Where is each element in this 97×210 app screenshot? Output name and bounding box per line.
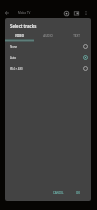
staticText: 854 × 480	[10, 67, 23, 71]
staticText: CANCEL	[53, 191, 64, 195]
button[interactable]: VIDEO	[5, 32, 33, 40]
button[interactable]: Back	[0, 4, 13, 22]
button[interactable]: 854 × 480	[5, 63, 91, 74]
button[interactable]: AUDIO	[33, 32, 62, 40]
staticText: AUDIO	[43, 34, 53, 38]
staticText: VIDEO	[15, 34, 24, 38]
staticText: TEXT	[73, 34, 80, 38]
button[interactable]: OK	[73, 188, 83, 198]
staticText: Select tracks	[10, 23, 37, 29]
staticText: None	[10, 45, 18, 49]
button[interactable]: Video settings	[60, 4, 73, 22]
button[interactable]: CANCEL	[50, 188, 67, 198]
button[interactable]: Auto	[5, 52, 91, 63]
staticText: Auto	[10, 56, 17, 60]
button[interactable]: TEXT	[62, 32, 91, 40]
button[interactable]: More options	[80, 4, 92, 22]
button[interactable]: Cast to device	[70, 4, 83, 22]
staticText: Moka TV	[18, 11, 31, 15]
staticText: OK	[76, 191, 80, 195]
button[interactable]: None	[5, 41, 91, 52]
